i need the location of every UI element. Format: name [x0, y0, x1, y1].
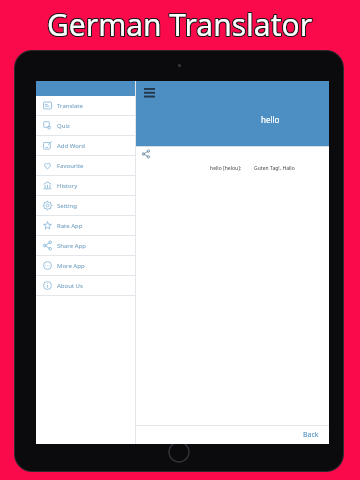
staticText: Share App	[57, 242, 86, 250]
button[interactable]: Share translation	[140, 148, 152, 160]
staticText: German Translator	[47, 4, 313, 45]
staticText: More App	[57, 262, 85, 270]
button[interactable]: History	[36, 176, 135, 195]
button[interactable]: Setting	[36, 196, 135, 215]
staticText: German Translator	[48, 3, 314, 44]
staticText: German Translator	[47, 3, 313, 44]
button[interactable]: About Us	[36, 276, 135, 295]
staticText: Translate	[57, 102, 83, 110]
button[interactable]: Rate App	[36, 216, 135, 235]
button[interactable]: Back	[303, 430, 319, 440]
staticText: German Translator	[48, 5, 314, 46]
button[interactable]: Quiz	[36, 116, 135, 135]
button[interactable]: More App	[36, 256, 135, 275]
staticText: About Us	[57, 282, 83, 290]
staticText: Setting	[57, 202, 77, 210]
button[interactable]: Open navigation menu	[141, 84, 157, 100]
staticText: Back	[303, 430, 319, 440]
staticText: History	[57, 182, 78, 190]
staticText: German Translator	[48, 4, 314, 45]
button[interactable]: Add Word	[36, 136, 135, 155]
staticText: German Translator	[47, 5, 313, 46]
button[interactable]: Translate	[36, 96, 135, 115]
staticText: Quiz	[57, 122, 70, 130]
staticText: hello [helou]:	[210, 165, 242, 172]
staticText: Rate App	[57, 222, 83, 230]
staticText: Guten Tag!, Hallo	[254, 165, 295, 172]
button[interactable]: Share App	[36, 236, 135, 255]
staticText: Favourite	[57, 162, 84, 170]
staticText: hello	[261, 114, 280, 125]
staticText: German Translator	[46, 3, 312, 44]
staticText: German Translator	[46, 4, 312, 45]
button[interactable]: Favourite	[36, 156, 135, 175]
staticText: German Translator	[46, 5, 312, 46]
staticText: Add Word	[57, 142, 85, 150]
